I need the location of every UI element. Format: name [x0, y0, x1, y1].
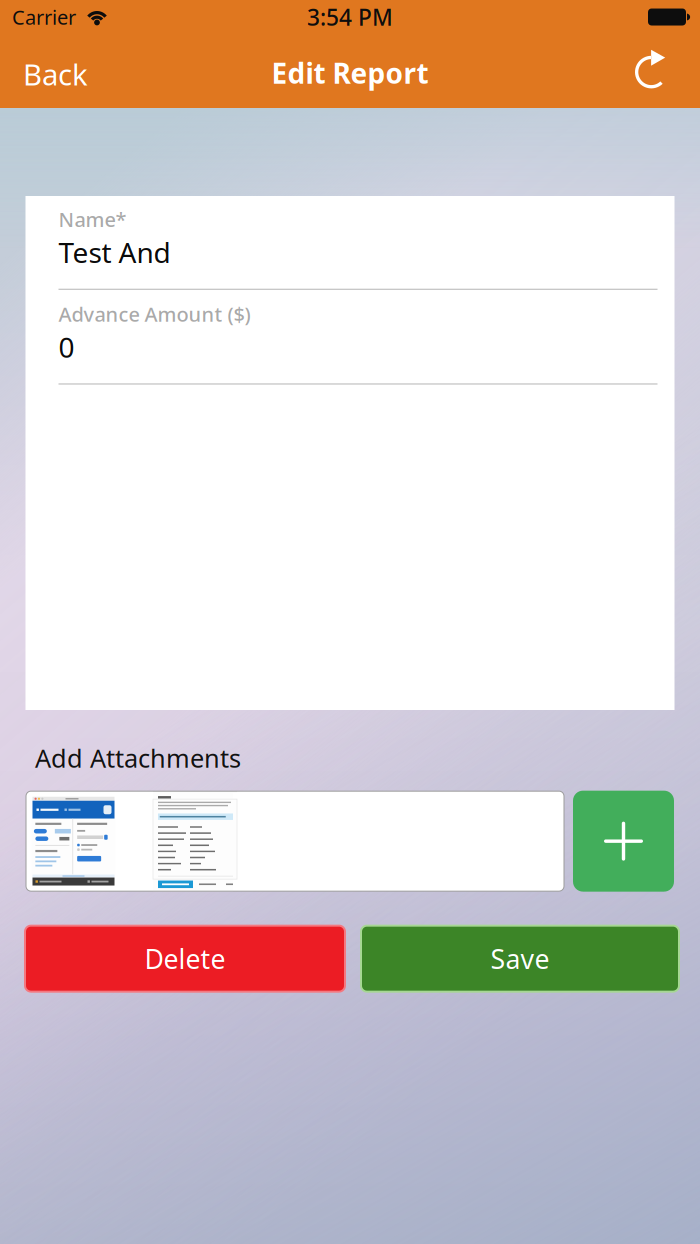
staticText: Name* — [58, 206, 126, 233]
staticText: Edit Report — [271, 54, 428, 92]
staticText: Delete — [144, 941, 225, 976]
button[interactable]: Save — [361, 926, 679, 992]
staticText: Back — [23, 54, 88, 93]
staticText: 3:54 PM — [307, 2, 393, 32]
button[interactable]: Add attachment — [573, 791, 674, 892]
staticText: 0 — [58, 328, 74, 365]
staticText: Save — [490, 941, 549, 976]
staticText: Add Attachments — [35, 741, 241, 775]
button[interactable]: Attachments — [26, 791, 564, 891]
button[interactable]: Delete — [25, 926, 345, 992]
button[interactable]: Back — [0, 40, 106, 108]
staticText: Advance Amount ($) — [58, 301, 250, 327]
staticText: Test And — [58, 234, 170, 271]
button[interactable]: Refresh — [615, 40, 700, 108]
staticText: Carrier — [12, 4, 76, 30]
